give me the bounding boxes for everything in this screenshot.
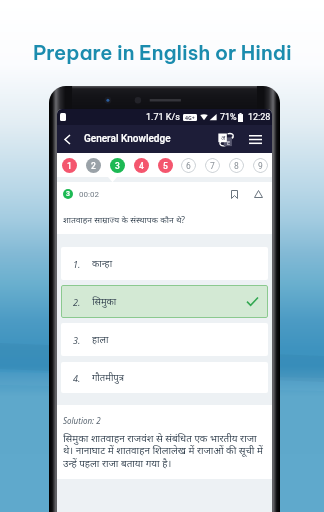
staticText: 6 xyxy=(186,161,191,171)
button[interactable]: 8 xyxy=(229,158,244,173)
staticText: अ xyxy=(221,134,226,141)
staticText: Prepare in English or Hindi xyxy=(33,40,292,65)
button[interactable]: 3 xyxy=(110,158,125,173)
staticText: 3 xyxy=(115,161,120,171)
staticText: 8 xyxy=(234,161,239,171)
button[interactable]: 9 xyxy=(253,158,268,173)
staticText: कान्हा xyxy=(92,257,113,270)
button[interactable]: Bookmark xyxy=(226,186,242,202)
staticText: हाला xyxy=(92,333,109,346)
button[interactable]: 2. xyxy=(61,285,268,318)
button[interactable]: Translate xyxy=(214,125,238,153)
staticText: 00:02 xyxy=(79,190,99,199)
button[interactable]: 6 xyxy=(181,158,196,173)
button[interactable]: 2 xyxy=(86,158,101,173)
button[interactable]: 1. xyxy=(61,247,268,280)
staticText: 2 xyxy=(91,161,96,171)
staticText: Solution: 2 xyxy=(63,415,101,426)
button[interactable]: 4 xyxy=(134,158,149,173)
staticText: 4. xyxy=(73,372,81,384)
staticText: 3 xyxy=(66,190,70,198)
staticText: 2. xyxy=(73,296,81,308)
button[interactable]: 5 xyxy=(158,158,173,173)
staticText: गौतमीपुत्र xyxy=(92,371,125,384)
staticText: 1.71 K/s xyxy=(146,112,180,123)
staticText: 71% xyxy=(220,112,237,123)
staticText: 4G+ xyxy=(185,114,195,121)
staticText: 4 xyxy=(139,161,144,171)
staticText: 7 xyxy=(210,161,215,171)
staticText: शातवाहन साम्राज्य के संस्थापक कौन थे? xyxy=(63,214,186,226)
staticText: 3. xyxy=(73,334,81,346)
button[interactable]: Report xyxy=(250,186,266,202)
button[interactable]: 4. xyxy=(61,362,268,393)
staticText: 1. xyxy=(73,258,81,270)
staticText: 12:28 xyxy=(248,112,271,123)
button[interactable]: Back xyxy=(57,125,77,153)
staticText: सिमुका शातवाहन राजवंश से संबंधित एक भारत… xyxy=(63,431,266,470)
button[interactable]: Menu xyxy=(242,125,268,153)
staticText: 1 xyxy=(67,161,72,171)
staticText: 5 xyxy=(163,161,168,171)
button[interactable]: 1 xyxy=(62,158,77,173)
staticText: General Knowledge xyxy=(84,133,171,145)
staticText: सिमुका xyxy=(92,295,117,308)
staticText: E xyxy=(227,139,231,146)
staticText: 9 xyxy=(258,161,263,171)
button[interactable]: 7 xyxy=(205,158,220,173)
button[interactable]: 3. xyxy=(61,323,268,356)
